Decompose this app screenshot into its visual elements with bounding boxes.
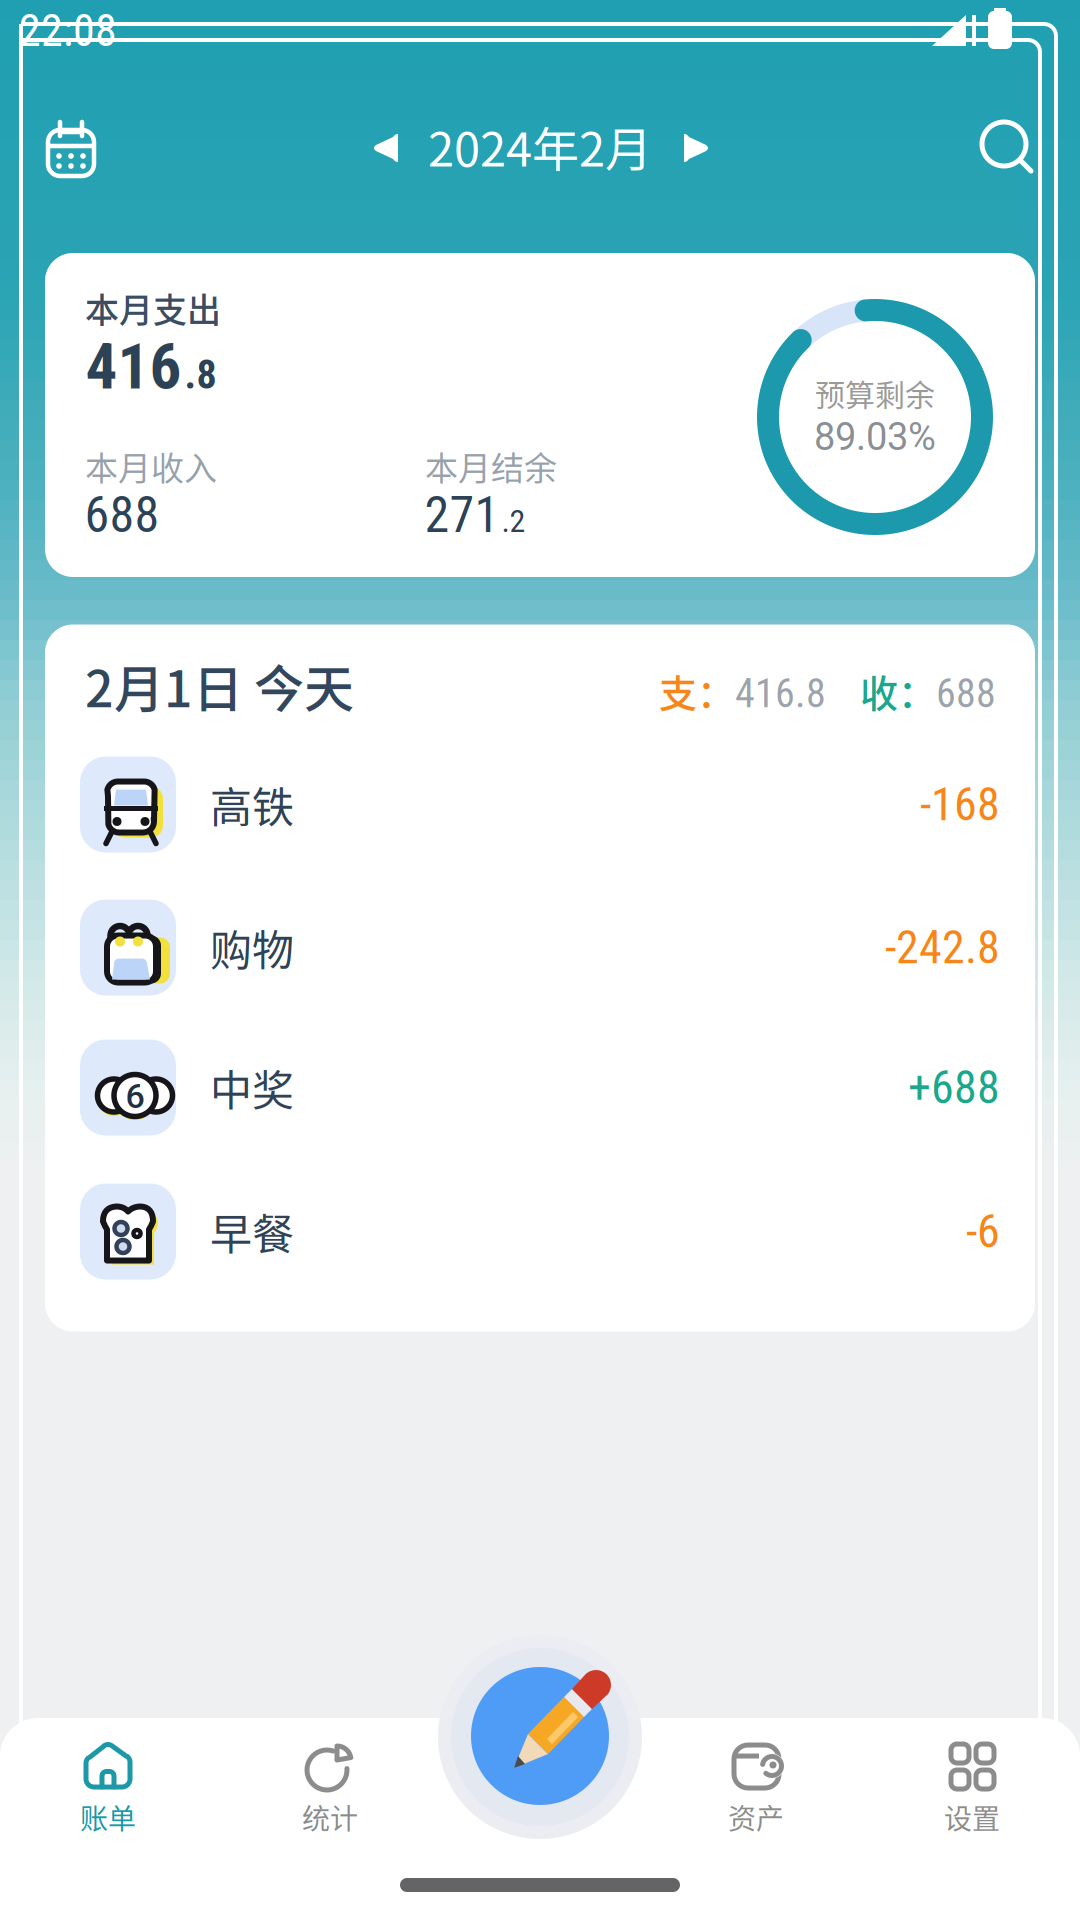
staticText: 688 (84, 486, 159, 544)
staticText: 账单 (80, 1797, 136, 1837)
button[interactable]: Next month (665, 114, 725, 182)
button[interactable]: 账单 (38, 1728, 178, 1848)
staticText: 22:08 (19, 5, 117, 57)
button[interactable]: Previous month (357, 114, 417, 182)
staticText: 设置 (944, 1797, 1000, 1837)
button[interactable]: Add record (471, 1667, 609, 1805)
staticText: -6 (966, 1204, 1000, 1258)
button[interactable]: Search (966, 106, 1046, 186)
staticText: 本月结余 (425, 442, 557, 490)
staticText: 416 (85, 330, 181, 404)
button[interactable]: 购物 (45, 899, 1035, 995)
staticText: 中奖 (210, 1057, 294, 1118)
staticText: 6 (125, 1077, 144, 1116)
button[interactable]: 设置 (902, 1728, 1042, 1848)
staticText: 早餐 (210, 1201, 294, 1262)
staticText: 2024年2月 (428, 112, 652, 180)
button[interactable]: 6 (45, 1039, 1035, 1135)
staticText: 高铁 (210, 774, 294, 835)
staticText: .2 (501, 502, 525, 540)
staticText: 统计 (302, 1797, 358, 1837)
staticText: +688 (908, 1060, 1000, 1114)
staticText: 支： (659, 663, 735, 718)
button[interactable]: 高铁 (45, 756, 1035, 852)
staticText: 2月1日 今天 (85, 649, 354, 722)
staticText: 购物 (210, 917, 294, 978)
button[interactable]: 资产 (686, 1728, 826, 1848)
staticText: 资产 (728, 1797, 784, 1837)
staticText: -168 (920, 777, 1000, 831)
staticText: 本月收入 (85, 442, 217, 490)
staticText: 416.8 (735, 670, 826, 717)
staticText: 收： (860, 663, 936, 718)
staticText: 688 (936, 670, 996, 717)
staticText: 271 (424, 486, 499, 544)
staticText: -242.8 (885, 920, 1000, 974)
button[interactable]: 统计 (260, 1728, 400, 1848)
staticText: 本月支出 (85, 283, 221, 333)
staticText: 89.03% (814, 415, 936, 459)
staticText: 预算剩余 (815, 371, 935, 415)
button[interactable]: 早餐 (45, 1183, 1035, 1279)
button[interactable]: Calendar (31, 110, 111, 190)
staticText: .8 (184, 351, 216, 398)
